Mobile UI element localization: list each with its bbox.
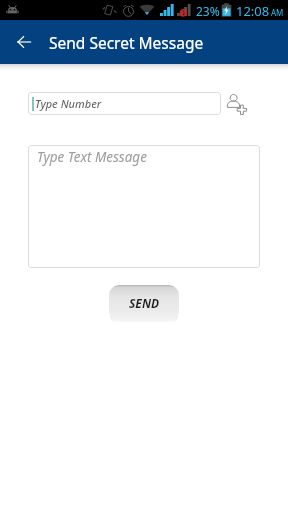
button[interactable]: Add contact — [225, 90, 249, 114]
staticText: 12:08 — [236, 2, 270, 20]
staticText: Type Number — [35, 96, 102, 111]
button[interactable]: SEND — [109, 285, 179, 321]
staticText: Send Secret Message — [49, 32, 204, 53]
staticText: 23% — [196, 3, 220, 19]
staticText: AM — [271, 7, 284, 18]
button[interactable]: Type Text Message — [28, 145, 260, 268]
staticText: SEND — [129, 295, 160, 311]
button[interactable]: Type Number — [28, 92, 221, 115]
button[interactable]: Back — [6, 24, 42, 60]
staticText: Type Text Message — [37, 148, 147, 166]
